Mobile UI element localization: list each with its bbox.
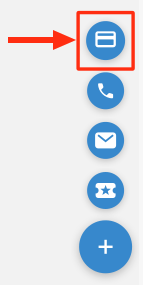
button[interactable]: Add — [79, 220, 132, 273]
button[interactable]: Call — [87, 72, 124, 109]
button[interactable]: Tickets — [87, 172, 124, 209]
button[interactable]: Mail — [87, 122, 124, 159]
button[interactable]: Payments — [86, 21, 125, 60]
